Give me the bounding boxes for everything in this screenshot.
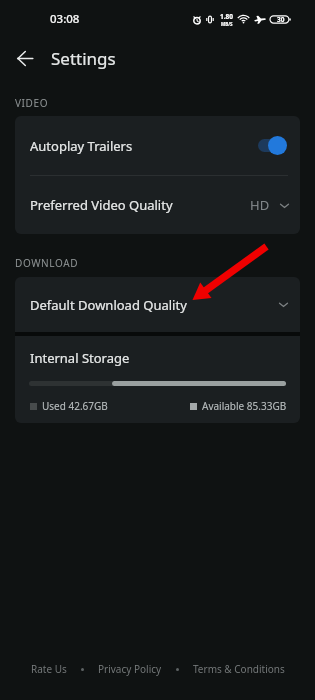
button[interactable]: Default Download Quality <box>15 277 300 332</box>
button[interactable]: Preferred Video Quality <box>15 176 300 234</box>
staticText: MB/S <box>221 21 233 27</box>
staticText: Rate Us <box>31 662 67 676</box>
button[interactable]: Rate Us <box>28 656 70 682</box>
staticText: Terms & Conditions <box>193 662 285 676</box>
staticText: Default Download Quality <box>30 296 187 314</box>
staticText: Internal Storage <box>30 349 130 367</box>
button[interactable]: Privacy Policy <box>95 656 165 682</box>
staticText: 30 <box>277 15 285 24</box>
staticText: Used 42.67GB <box>42 399 108 413</box>
button[interactable]: Terms & Conditions <box>190 656 288 682</box>
staticText: DOWNLOAD <box>15 256 79 270</box>
staticText: Privacy Policy <box>98 662 162 676</box>
button[interactable]: Autoplay Trailers <box>15 116 300 175</box>
staticText: Autoplay Trailers <box>30 137 133 155</box>
staticText: Settings <box>51 47 116 70</box>
staticText: Available 85.33GB <box>202 399 287 413</box>
staticText: VIDEO <box>15 96 49 110</box>
staticText: Preferred Video Quality <box>30 196 173 214</box>
staticText: HD <box>250 196 270 214</box>
staticText: 03:08 <box>50 11 80 27</box>
button[interactable]: Back <box>9 42 41 74</box>
staticText: 1.80 <box>220 12 233 21</box>
